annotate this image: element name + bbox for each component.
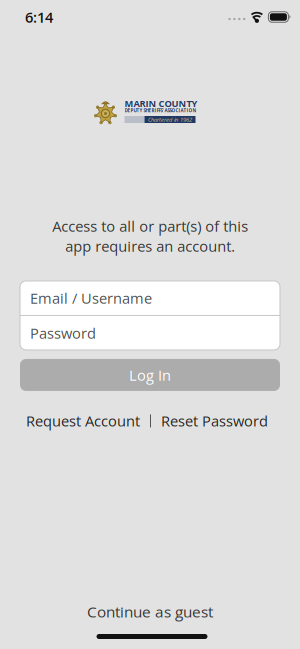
button[interactable]: Password (20, 316, 280, 350)
staticText: Request Account (26, 411, 140, 431)
button[interactable]: Reset Password (161, 411, 268, 431)
staticText: 6:14 (25, 7, 53, 27)
staticText: Email / Username (30, 288, 152, 308)
staticText: Access to all or part(s) of this app req… (52, 216, 248, 256)
button[interactable]: Request Account (26, 411, 140, 431)
button[interactable]: Continue as guest (87, 601, 213, 622)
staticText: Reset Password (161, 411, 268, 431)
staticText: Password (30, 323, 96, 343)
button[interactable]: Log In (20, 359, 280, 391)
staticText: Continue as guest (87, 601, 213, 622)
staticText: MARIN COUNTY (124, 97, 197, 110)
button[interactable]: Email / Username (20, 281, 280, 315)
staticText: Chartered in 1962 (148, 115, 192, 123)
staticText: DEPUTY SHERIFFS' ASSOCIATION (124, 107, 196, 114)
staticText: Log In (129, 365, 171, 385)
